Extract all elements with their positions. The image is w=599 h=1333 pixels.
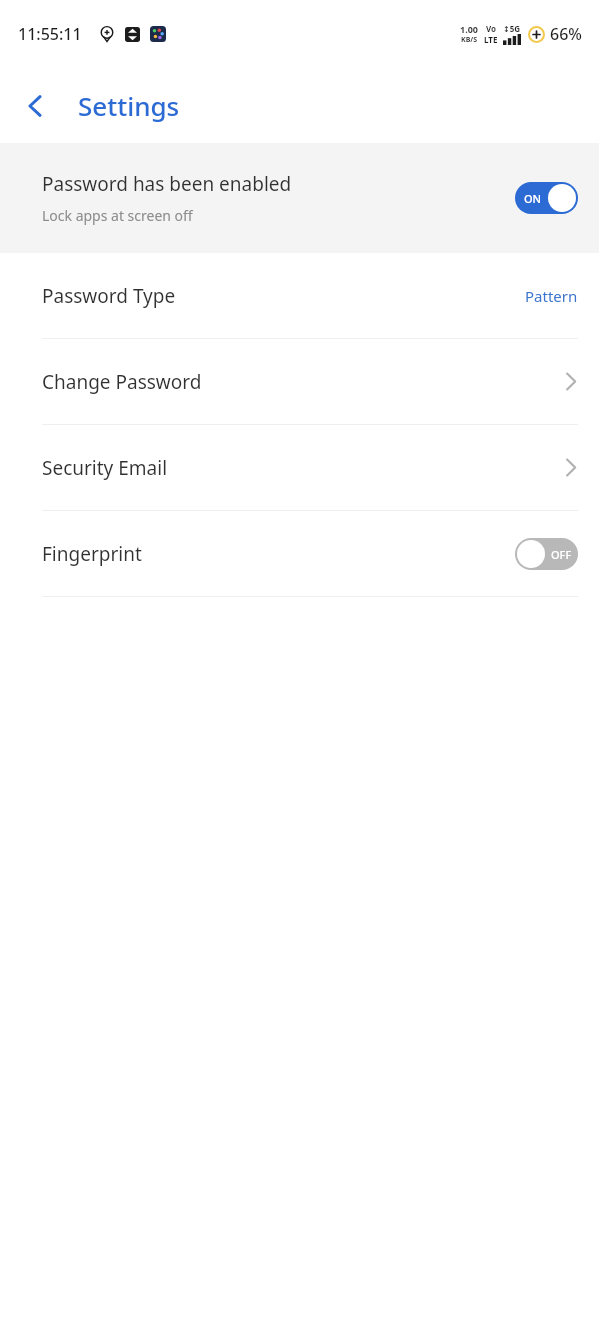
staticText: Security Email <box>42 455 564 481</box>
staticText: KB/S <box>461 35 478 45</box>
staticText: ↕5G <box>503 23 521 34</box>
staticText: Vo <box>486 23 497 34</box>
staticText: Password Type <box>42 283 525 309</box>
staticText: 11:55:11 <box>18 23 82 45</box>
button[interactable]: Fingerprint <box>0 511 599 596</box>
staticText: Password has been enabled <box>42 171 292 197</box>
staticText: Pattern <box>525 286 578 306</box>
staticText: Fingerprint <box>42 541 515 567</box>
button[interactable]: Password Type <box>0 253 599 338</box>
staticText: Lock apps at screen off <box>42 206 193 225</box>
button[interactable]: Back <box>18 85 52 127</box>
staticText: Change Password <box>42 369 564 395</box>
staticText: 66% <box>550 23 582 45</box>
staticText: OFF <box>551 547 572 562</box>
button[interactable]: Toggle off <box>515 538 578 570</box>
staticText: ON <box>524 191 542 206</box>
button[interactable]: Security Email <box>0 425 599 510</box>
staticText: Settings <box>78 88 180 123</box>
button[interactable]: Change Password <box>0 339 599 424</box>
staticText: 1.00 <box>460 23 478 35</box>
staticText: LTE <box>484 34 498 45</box>
button[interactable]: Toggle on <box>515 182 578 214</box>
button[interactable]: Password has been enabled <box>0 143 599 253</box>
